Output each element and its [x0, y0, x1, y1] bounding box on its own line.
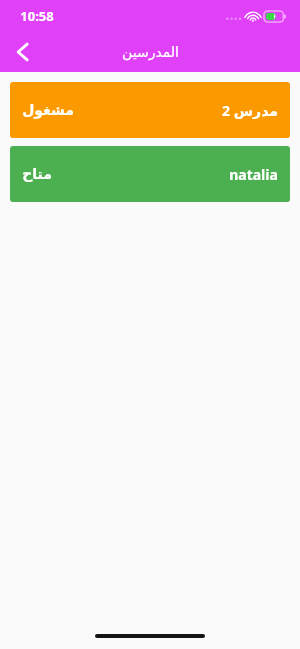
button[interactable]: Back: [0, 32, 44, 72]
button[interactable]: متاح: [10, 146, 290, 202]
staticText: مشغول: [22, 102, 74, 118]
staticText: مدرس 2: [222, 101, 278, 120]
staticText: 10:58: [20, 7, 54, 25]
staticText: متاح: [22, 166, 52, 182]
staticText: المدرسين: [122, 44, 179, 60]
button[interactable]: مشغول: [10, 82, 290, 138]
staticText: natalia: [229, 165, 278, 184]
